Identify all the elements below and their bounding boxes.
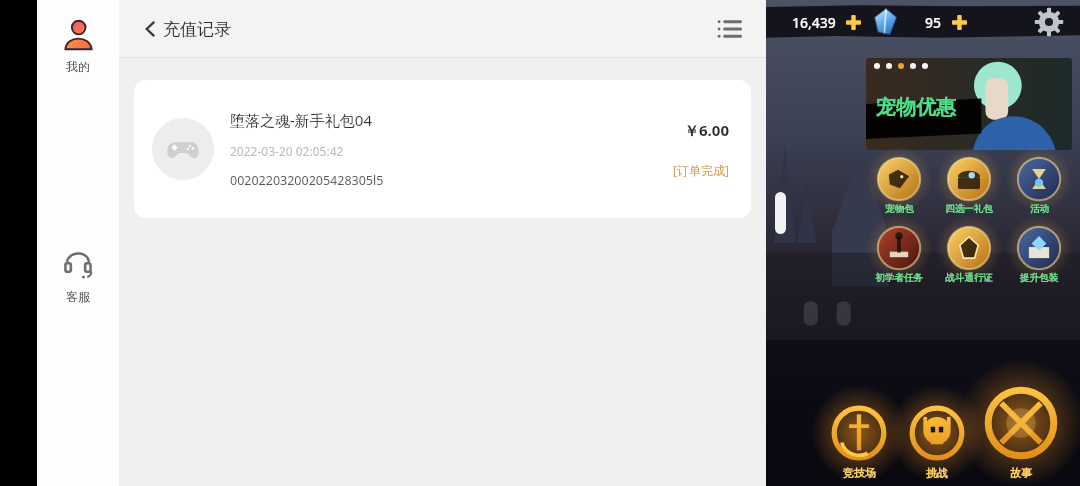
button[interactable]: Order list bbox=[710, 9, 750, 49]
staticText: 故事 bbox=[1010, 466, 1032, 480]
button[interactable]: 竞技场 bbox=[826, 402, 892, 480]
button[interactable]: Settings bbox=[1032, 5, 1066, 39]
button[interactable]: 我的 bbox=[53, 14, 103, 78]
button[interactable]: Back bbox=[129, 7, 173, 51]
staticText: 95 bbox=[925, 13, 942, 32]
button[interactable]: 宠物包 bbox=[864, 156, 934, 215]
button[interactable]: 四选一礼包 bbox=[934, 156, 1004, 215]
staticText: 客服 bbox=[66, 289, 90, 304]
staticText: 2022-03-20 02:05:42 bbox=[230, 143, 344, 159]
button[interactable]: 堕落之魂-新手礼包04 bbox=[134, 80, 751, 218]
staticText: 四选一礼包 bbox=[945, 203, 993, 215]
staticText: 战斗通行证 bbox=[945, 272, 993, 284]
staticText: 宠物优惠 bbox=[876, 95, 956, 120]
staticText: 充值记录 bbox=[163, 19, 231, 40]
button[interactable]: 客服 bbox=[53, 244, 103, 308]
staticText: 堕落之魂-新手礼包04 bbox=[230, 110, 372, 130]
button[interactable]: 故事 bbox=[978, 382, 1064, 480]
staticText: 初学者任务 bbox=[875, 272, 923, 284]
button[interactable]: 战斗通行证 bbox=[934, 225, 1004, 284]
button[interactable]: Open drawer bbox=[775, 192, 786, 234]
staticText: ￥6.00 bbox=[684, 120, 729, 140]
button[interactable]: 初学者任务 bbox=[864, 225, 934, 284]
staticText: 活动 bbox=[1030, 203, 1049, 215]
staticText: 16,439 bbox=[792, 13, 836, 32]
staticText: [订单完成] bbox=[673, 162, 729, 178]
staticText: 提升包装 bbox=[1020, 272, 1058, 284]
button[interactable]: 宠物优惠 bbox=[866, 58, 1072, 150]
staticText: 竞技场 bbox=[843, 466, 876, 480]
staticText: 挑战 bbox=[926, 466, 948, 480]
staticText: 00202203200205428305l5 bbox=[230, 172, 384, 189]
staticText: 宠物包 bbox=[885, 203, 914, 215]
button[interactable]: 活动 bbox=[1004, 156, 1074, 215]
staticText: 我的 bbox=[66, 59, 90, 74]
button[interactable]: 挑战 bbox=[904, 402, 970, 480]
button[interactable]: 提升包装 bbox=[1004, 225, 1074, 284]
